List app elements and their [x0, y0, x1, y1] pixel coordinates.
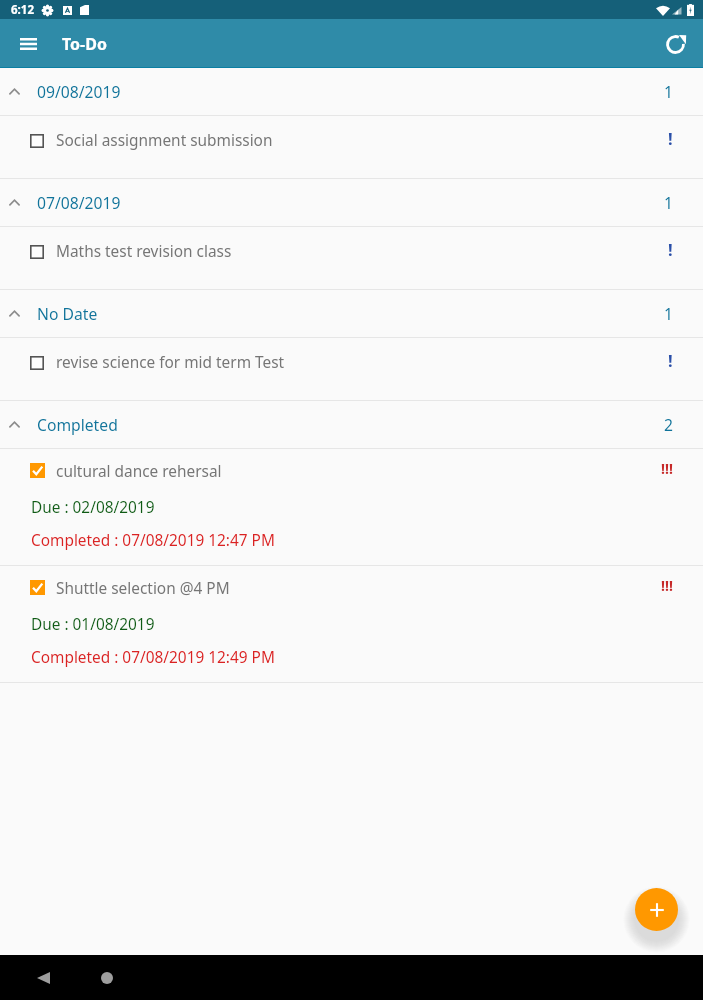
button[interactable]: Open navigation menu	[12, 28, 44, 60]
button[interactable]: revise science for mid term Test	[0, 338, 703, 401]
staticText: 1	[664, 192, 673, 213]
button[interactable]: Social assignment submission	[0, 116, 703, 179]
staticText: Due : 02/08/2019	[31, 497, 155, 518]
staticText: cultural dance rehersal	[56, 461, 222, 482]
button[interactable]: 09/08/2019	[0, 68, 703, 116]
staticText: Completed	[37, 414, 118, 435]
staticText: Maths test revision class	[56, 241, 232, 262]
button[interactable]: Add task	[635, 888, 678, 931]
button[interactable]: Shuttle selection @4 PM	[0, 566, 703, 683]
staticText: revise science for mid term Test	[56, 352, 285, 373]
staticText: No Date	[37, 303, 98, 324]
staticText: 6:12	[11, 2, 34, 18]
staticText: !!!	[661, 576, 673, 595]
button[interactable]: cultural dance rehersal	[0, 449, 703, 566]
button[interactable]: 07/08/2019	[0, 179, 703, 227]
staticText: 07/08/2019	[37, 192, 121, 213]
staticText: 1	[664, 81, 673, 102]
button[interactable]: Back	[26, 961, 60, 995]
button[interactable]: Home	[90, 961, 124, 995]
staticText: Completed : 07/08/2019 12:47 PM	[31, 530, 275, 551]
staticText: 1	[664, 303, 673, 324]
button[interactable]: Maths test revision class	[0, 227, 703, 290]
staticText: !!!	[661, 459, 673, 478]
staticText: 09/08/2019	[37, 81, 121, 102]
staticText: !	[668, 238, 673, 260]
staticText: !	[668, 127, 673, 149]
button[interactable]: No Date	[0, 290, 703, 338]
staticText: 2	[664, 414, 673, 435]
staticText: Completed : 07/08/2019 12:49 PM	[31, 647, 275, 668]
button[interactable]: Refresh	[659, 28, 691, 60]
staticText: Social assignment submission	[56, 130, 273, 151]
button[interactable]: Completed	[0, 401, 703, 449]
staticText: Due : 01/08/2019	[31, 614, 155, 635]
staticText: Shuttle selection @4 PM	[56, 578, 230, 599]
staticText: To-Do	[62, 33, 107, 55]
staticText: !	[668, 349, 673, 371]
